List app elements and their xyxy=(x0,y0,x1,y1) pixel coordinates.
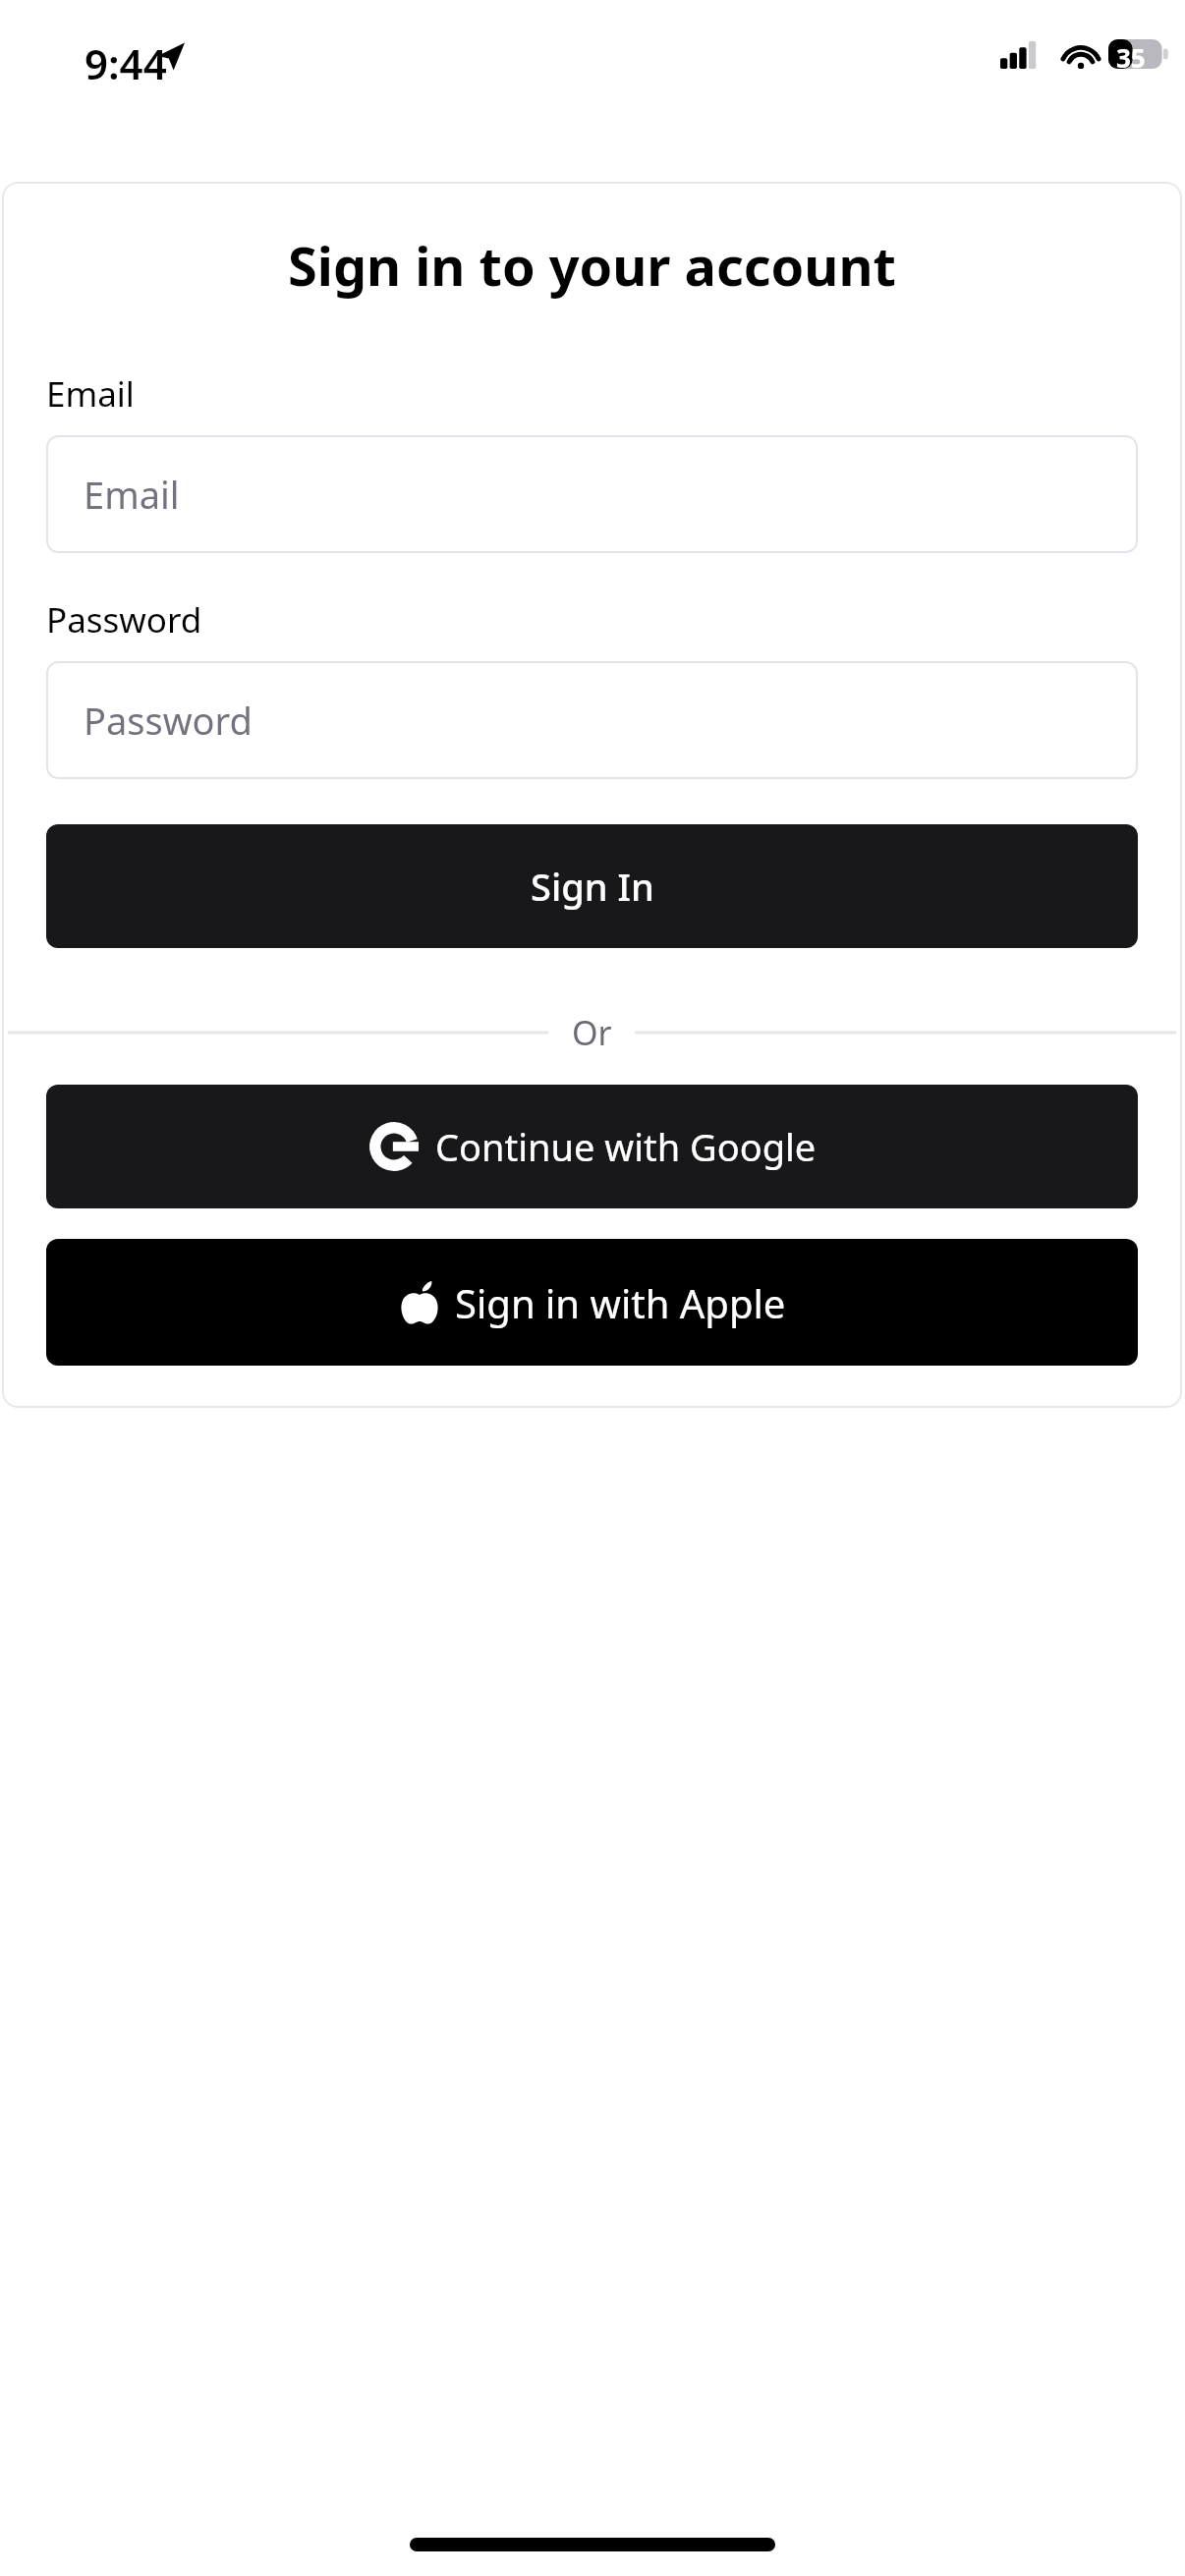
staticText: Email xyxy=(46,370,135,418)
button[interactable]: Google xyxy=(46,1085,1138,1208)
button[interactable]: Password xyxy=(46,661,1138,779)
staticText: 9:44 xyxy=(85,35,167,91)
staticText: Email xyxy=(84,469,180,520)
staticText: Sign in with Apple xyxy=(455,1276,786,1329)
other: Apple xyxy=(398,1281,441,1324)
button[interactable]: Apple xyxy=(46,1239,1138,1366)
other: Google xyxy=(368,1121,420,1172)
button[interactable]: Sign In xyxy=(46,824,1138,948)
staticText: Sign in to your account xyxy=(2,229,1182,302)
button[interactable]: Email xyxy=(46,435,1138,553)
staticText: Continue with Google xyxy=(435,1121,817,1172)
staticText: Sign In xyxy=(531,861,654,912)
staticText: Password xyxy=(84,695,253,746)
staticText: Password xyxy=(46,596,202,644)
staticText: Or xyxy=(572,1010,612,1055)
staticText: 35 xyxy=(1116,40,1146,75)
